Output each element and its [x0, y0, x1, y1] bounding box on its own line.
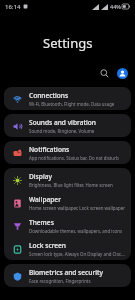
button[interactable]: Wallpaper [4, 191, 131, 214]
staticText: 16:14 [5, 3, 21, 11]
staticText: Settings [43, 34, 93, 52]
staticText: Display [29, 172, 52, 181]
button[interactable]: Account [115, 66, 129, 80]
button[interactable]: Notifications [4, 141, 131, 164]
staticText: Notifications [29, 145, 70, 154]
staticText: Sound mode, Ringtone, Volume [29, 128, 95, 134]
staticText: Face recognition, Fingerprints [29, 278, 91, 284]
staticText: 44% [110, 3, 121, 10]
staticText: Wi-Fi, Bluetooth, Flight mode, Data usag… [29, 101, 115, 107]
button[interactable]: Sounds and vibration [4, 114, 131, 137]
staticText: Connections [29, 91, 69, 100]
staticText: Sounds and vibration [29, 118, 96, 127]
staticText: Lock screen [29, 241, 66, 250]
staticText: Themes [29, 218, 54, 227]
button[interactable]: Themes [4, 214, 131, 237]
button[interactable]: Biometrics and security [4, 264, 131, 287]
staticText: App notifications, Status bar, Do not di… [29, 155, 119, 161]
button[interactable]: Lock screen [4, 237, 131, 260]
staticText: Brightness, Blue light filter, Home scre… [29, 182, 113, 188]
staticText: Wallpaper [29, 195, 61, 204]
staticText: Screen lock type, Always On Display and … [29, 251, 125, 257]
button[interactable]: Search [96, 65, 112, 81]
staticText: Home screen wallpaper, Lock screen wallp… [29, 205, 125, 211]
button[interactable]: Connections [4, 87, 131, 110]
button[interactable]: Display [4, 168, 131, 191]
staticText: Biometrics and security [29, 268, 104, 277]
staticText: Downloadable themes, wallpapers, and ico… [29, 228, 123, 234]
